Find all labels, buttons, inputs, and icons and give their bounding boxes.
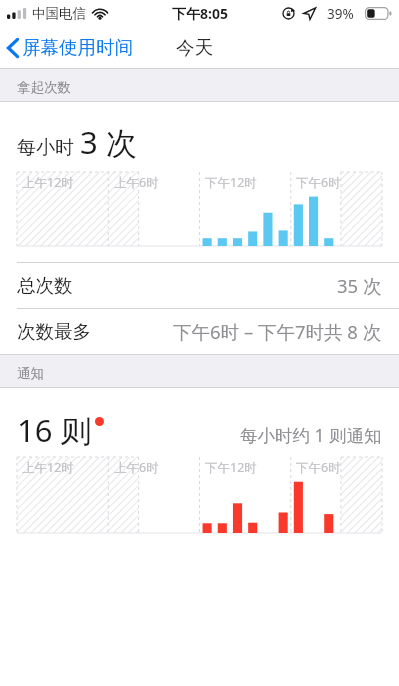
- staticText: 16 则: [17, 409, 92, 451]
- staticText: 下午6时: [296, 459, 341, 476]
- staticText: 每小时约 1 则通知: [240, 423, 382, 447]
- other: 返回: [7, 38, 19, 58]
- staticText: 通知: [17, 365, 44, 382]
- staticText: 总次数: [17, 274, 73, 297]
- staticText: 下午12时: [205, 459, 257, 476]
- staticText: 下午6时 – 下午7时共 8 次: [173, 319, 382, 344]
- staticText: 35 次: [337, 273, 382, 298]
- staticText: 今天: [176, 36, 213, 59]
- button[interactable]: 返回: [0, 31, 139, 64]
- staticText: 每小时: [17, 136, 74, 160]
- staticText: 下午8:05: [172, 4, 228, 23]
- button[interactable]: 总次数: [0, 263, 399, 308]
- staticText: 上午12时: [22, 459, 74, 476]
- staticText: 上午6时: [114, 459, 159, 476]
- staticText: 3 次: [80, 121, 137, 163]
- staticText: 中国电信: [32, 5, 86, 22]
- staticText: 上午12时: [22, 174, 74, 191]
- staticText: 下午12时: [205, 174, 257, 191]
- staticText: 屏幕使用时间: [22, 36, 133, 59]
- button[interactable]: 次数最多: [0, 309, 399, 354]
- staticText: 拿起次数: [17, 79, 71, 96]
- staticText: 上午6时: [114, 174, 159, 191]
- staticText: 下午6时: [296, 174, 341, 191]
- staticText: 次数最多: [17, 320, 91, 343]
- staticText: 39%: [327, 5, 354, 23]
